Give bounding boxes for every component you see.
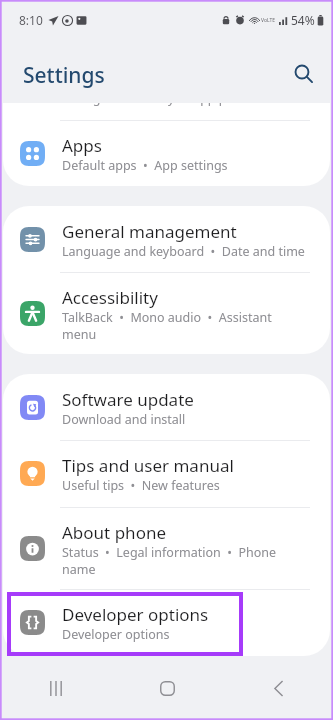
staticText: About phone bbox=[62, 521, 167, 544]
staticText: Default apps • App settings bbox=[62, 157, 228, 174]
staticText: Battery and device care bbox=[62, 67, 249, 90]
staticText: VoLTE bbox=[261, 17, 276, 24]
button[interactable]: Accessibility bbox=[3, 272, 330, 354]
button[interactable]: About phone bbox=[3, 507, 330, 589]
staticText: General management bbox=[62, 220, 237, 243]
button[interactable]: General management bbox=[3, 206, 330, 272]
button[interactable]: Battery and device care bbox=[3, 53, 330, 120]
staticText: Tips and user manual bbox=[62, 454, 234, 477]
staticText: Developer options bbox=[62, 626, 170, 643]
button[interactable]: Software update bbox=[3, 374, 330, 440]
staticText: Useful tips • New features bbox=[62, 477, 220, 494]
staticText: 54% bbox=[291, 12, 315, 28]
button[interactable]: Back bbox=[254, 664, 302, 712]
staticText: Storage • Memory • App protection bbox=[62, 90, 280, 107]
button[interactable]: Home bbox=[143, 664, 191, 712]
staticText: 8:10 bbox=[19, 12, 43, 28]
button[interactable]: Apps bbox=[3, 120, 330, 186]
staticText: Developer options bbox=[62, 603, 209, 626]
button[interactable]: Tips and user manual bbox=[3, 440, 330, 507]
staticText: Status • Legal information • Phone name bbox=[62, 544, 305, 578]
button[interactable]: Recents bbox=[32, 664, 80, 712]
staticText: Language and keyboard • Date and time bbox=[62, 243, 305, 260]
staticText: Apps bbox=[62, 134, 102, 157]
staticText: Download and install bbox=[62, 411, 186, 428]
staticText: TalkBack • Mono audio • Assistant menu bbox=[62, 309, 305, 343]
staticText: Settings bbox=[23, 61, 105, 90]
button[interactable]: Search bbox=[286, 56, 320, 90]
button[interactable]: Developer options bbox=[3, 589, 330, 656]
staticText: Accessibility bbox=[62, 286, 158, 309]
staticText: Software update bbox=[62, 388, 194, 411]
